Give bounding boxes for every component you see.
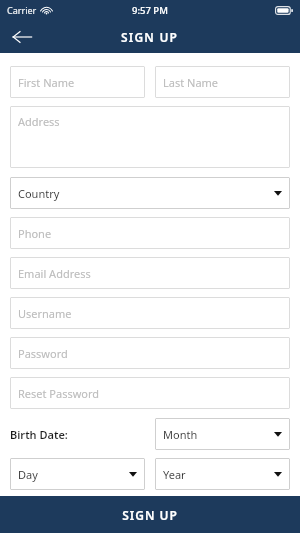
button[interactable]: SIGN UP <box>0 496 300 533</box>
button[interactable]: Phone <box>10 217 290 249</box>
button[interactable]: Year <box>155 458 290 490</box>
staticText: Phone <box>18 226 52 241</box>
staticText: 9:57 PM <box>132 4 168 17</box>
button[interactable]: Day <box>10 458 145 490</box>
staticText: First Name <box>18 75 75 90</box>
button[interactable]: Back <box>0 20 44 53</box>
staticText: Reset Password <box>18 386 100 401</box>
button[interactable]: Last Name <box>155 66 290 98</box>
staticText: Address <box>18 114 60 129</box>
button[interactable]: Password <box>10 337 290 369</box>
staticText: Country <box>18 186 274 201</box>
staticText: Day <box>18 467 129 482</box>
button[interactable]: First Name <box>10 66 145 98</box>
staticText: Year <box>163 467 274 482</box>
button[interactable]: Username <box>10 297 290 329</box>
staticText: Password <box>18 346 68 361</box>
staticText: Birth Date: <box>10 427 68 442</box>
staticText: Month <box>163 427 274 442</box>
button[interactable]: Reset Password <box>10 377 290 409</box>
staticText: SIGN UP <box>122 507 178 523</box>
staticText: Carrier <box>7 4 37 16</box>
button[interactable]: Address <box>10 106 290 168</box>
button[interactable]: Month <box>155 418 290 450</box>
staticText: SIGN UP <box>121 29 179 45</box>
staticText: Username <box>18 306 72 321</box>
button[interactable]: Country <box>10 177 290 209</box>
staticText: Last Name <box>163 75 219 90</box>
button[interactable]: Email Address <box>10 257 290 289</box>
staticText: Email Address <box>18 266 91 281</box>
